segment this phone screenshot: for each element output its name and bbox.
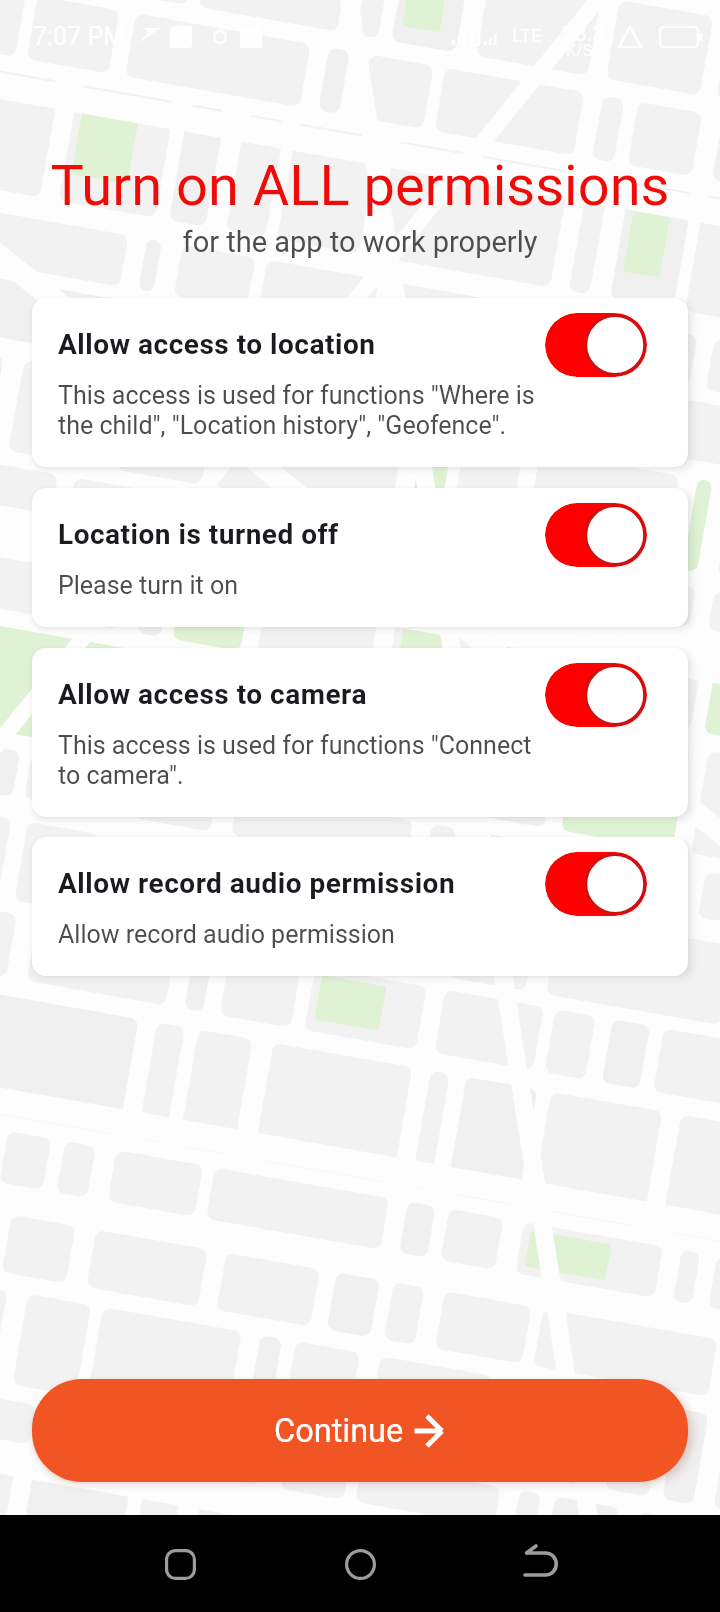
staticText: This access is used for functions "Conne… — [58, 731, 540, 790]
staticText: Allow access to camera — [58, 678, 367, 711]
button[interactable]: Continue — [32, 1379, 688, 1482]
button[interactable]: Toggle permission — [545, 663, 647, 727]
button[interactable]: Toggle permission — [32, 648, 688, 817]
staticText: K/S — [566, 41, 593, 60]
staticText: Allow record audio permission — [58, 867, 456, 900]
staticText: LTE — [512, 24, 542, 46]
button[interactable]: Toggle permission — [32, 837, 688, 976]
staticText: 7:07 PM — [33, 22, 126, 51]
staticText: Allow access to location — [58, 328, 376, 361]
staticText: This access is used for functions "Where… — [58, 381, 540, 440]
staticText: for the app to work properly — [0, 225, 720, 259]
button[interactable]: Toggle permission — [545, 852, 647, 916]
staticText: Please turn it on — [58, 571, 540, 600]
button[interactable]: Toggle permission — [545, 313, 647, 377]
button[interactable]: Toggle permission — [32, 298, 688, 467]
button[interactable]: Toggle permission — [32, 488, 688, 627]
button[interactable]: Recent apps — [135, 1519, 225, 1609]
staticText: Allow record audio permission — [58, 920, 540, 949]
button[interactable]: Toggle permission — [545, 503, 647, 567]
staticText: Turn on ALL permissions — [0, 153, 720, 219]
staticText: Location is turned off — [58, 518, 339, 551]
button[interactable]: Home — [315, 1519, 405, 1609]
button[interactable]: Back — [495, 1519, 585, 1609]
staticText: 28.3 — [562, 21, 605, 47]
staticText: Continue — [274, 1412, 404, 1450]
